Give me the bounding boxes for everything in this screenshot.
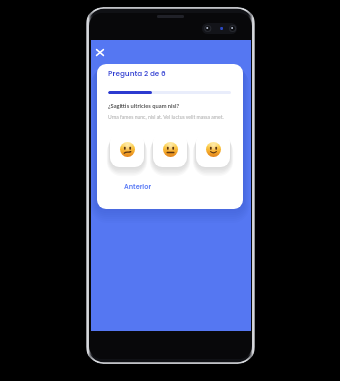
button[interactable]: Answer 3 (196, 133, 230, 167)
button[interactable]: Answer 1 (110, 133, 144, 167)
button[interactable]: Answer 2 (153, 133, 187, 167)
button[interactable]: Close (91, 43, 109, 61)
staticText: Pregunta 2 de 6 (108, 68, 166, 78)
staticText: Urna fames nunc, nisl at. Vel luctus vel… (108, 114, 224, 120)
staticText: ¿Sagittis ultricies quam nisl? (108, 102, 180, 109)
staticText: Anterior (124, 182, 152, 191)
button[interactable]: Anterior (124, 182, 152, 191)
